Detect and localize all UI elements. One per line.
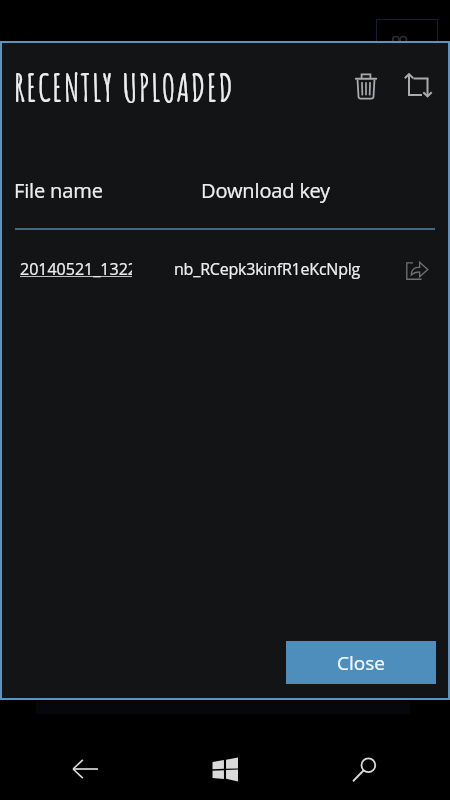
staticText: 20140521_132222 — [20, 258, 132, 280]
button[interactable]: 20140521_132222 — [20, 258, 132, 284]
button[interactable]: Delete — [344, 63, 388, 107]
staticText: RECENTLY UPLOADED — [14, 63, 235, 111]
button[interactable]: Share — [399, 253, 435, 289]
button[interactable]: Refresh — [396, 63, 440, 107]
button[interactable]: Back — [45, 749, 125, 789]
staticText: Download key — [201, 177, 331, 204]
staticText: Close — [337, 650, 385, 676]
button[interactable]: Home — [185, 749, 265, 789]
button[interactable]: Close — [286, 641, 436, 684]
button[interactable]: Search — [325, 749, 405, 789]
staticText: nb_RCepk3kinfR1eKcNplg — [174, 258, 361, 280]
staticText: File name — [14, 177, 103, 204]
